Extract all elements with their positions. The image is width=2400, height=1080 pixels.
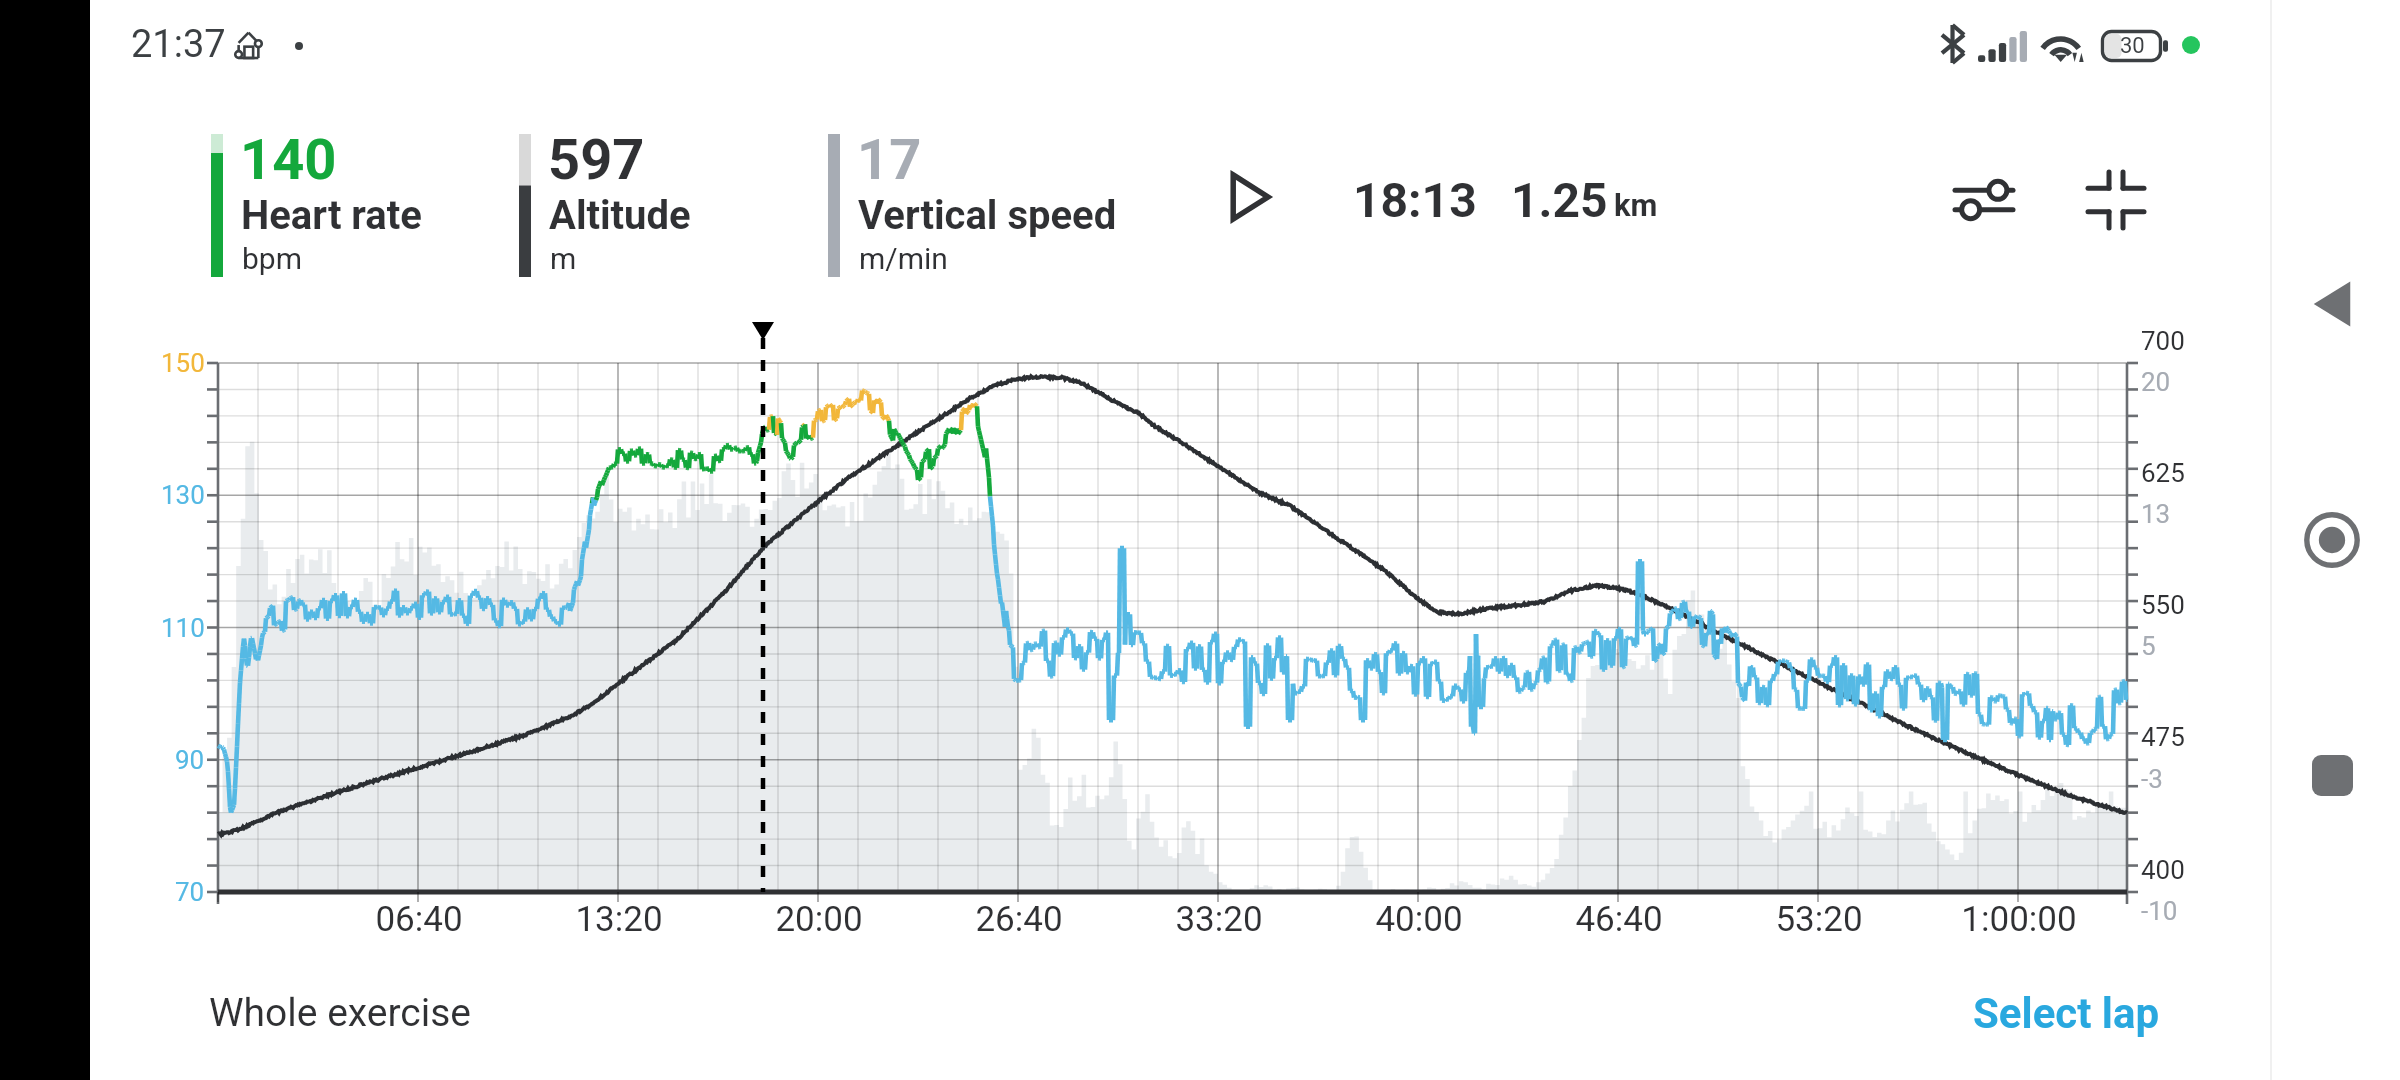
staticText: 130	[161, 480, 205, 510]
staticText: -10	[2141, 896, 2178, 926]
button[interactable]: Recent apps	[2286, 729, 2378, 821]
staticText: 53:20	[1775, 899, 1863, 940]
button[interactable]: Adjust settings	[1944, 160, 2024, 240]
staticText: 26:40	[975, 899, 1063, 940]
staticText: 1:00:00	[1961, 899, 2077, 940]
button[interactable]: Collapse	[2076, 160, 2156, 240]
button[interactable]: Play	[1212, 159, 1288, 235]
staticText: 20	[2141, 367, 2171, 397]
staticText: 400	[2141, 855, 2185, 885]
staticText: 5	[2141, 631, 2156, 661]
staticText: 18:13	[1353, 172, 1477, 228]
staticText: 597	[548, 127, 645, 193]
staticText: 40:00	[1375, 899, 1463, 940]
staticText: km	[1614, 187, 1658, 223]
staticText: 150	[161, 348, 205, 378]
button[interactable]: Home	[2286, 494, 2378, 586]
button[interactable]: Select lap	[1880, 976, 2160, 1050]
staticText: 30	[2120, 33, 2145, 59]
staticText: 46:40	[1575, 899, 1663, 940]
staticText: 475	[2141, 722, 2185, 752]
staticText: 33:20	[1175, 899, 1263, 940]
staticText: m	[550, 241, 577, 276]
button[interactable]: Back	[2286, 258, 2378, 350]
staticText: Heart rate	[241, 192, 422, 239]
button[interactable]: Whole exercise	[209, 976, 472, 1050]
staticText: 17	[857, 127, 922, 193]
staticText: Whole exercise	[209, 990, 472, 1036]
staticText: 700	[2141, 326, 2185, 356]
staticText: 625	[2141, 458, 2185, 488]
staticText: Select lap	[1973, 989, 2160, 1038]
staticText: 21:37	[131, 22, 226, 67]
staticText: 13:20	[575, 899, 663, 940]
staticText: 13	[2141, 499, 2171, 529]
staticText: Altitude	[549, 192, 691, 239]
staticText: 20:00	[775, 899, 863, 940]
staticText: 06:40	[375, 899, 463, 940]
staticText: 110	[161, 613, 205, 643]
staticText: m/min	[859, 241, 948, 276]
staticText: 90	[175, 745, 205, 775]
staticText: -3	[2141, 764, 2163, 794]
staticText: 70	[175, 877, 205, 907]
staticText: 140	[240, 127, 337, 193]
staticText: 1.25	[1511, 172, 1608, 228]
staticText: 550	[2141, 590, 2185, 620]
staticText: bpm	[242, 241, 302, 276]
staticText: Vertical speed	[858, 192, 1117, 239]
